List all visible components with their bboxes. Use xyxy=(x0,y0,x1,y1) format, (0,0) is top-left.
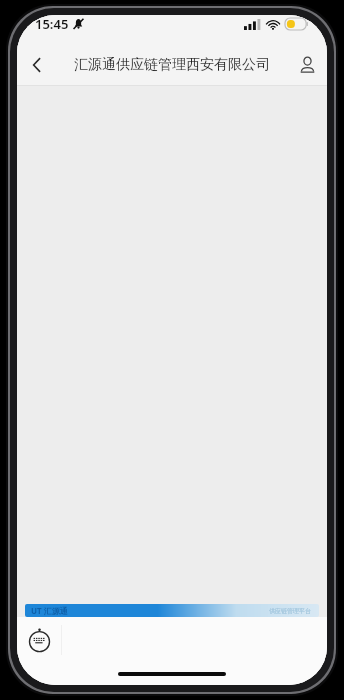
staticText: 15:45 xyxy=(35,15,69,33)
button[interactable]: Banner xyxy=(25,604,319,617)
button[interactable]: Profile xyxy=(287,45,327,85)
staticText: 供应链管理平台 xyxy=(269,607,311,615)
button[interactable]: Keyboard xyxy=(17,617,61,663)
staticText: UT 汇源通 xyxy=(31,605,68,616)
button[interactable]: Back xyxy=(17,45,57,85)
staticText: 汇源通供应链管理西安有限公司 xyxy=(74,56,270,74)
